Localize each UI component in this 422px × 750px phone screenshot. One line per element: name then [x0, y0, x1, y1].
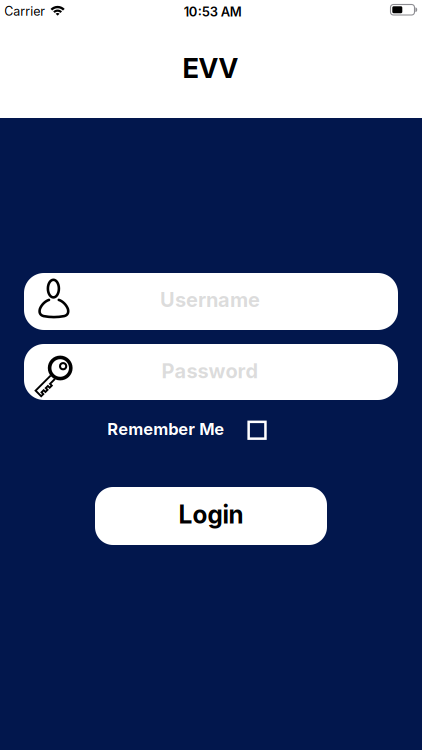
staticText: 10:53 AM: [184, 4, 242, 19]
staticText: Password: [161, 359, 258, 383]
staticText: Remember Me: [107, 419, 224, 439]
staticText: EVV: [183, 52, 239, 85]
button[interactable]: Password: [24, 344, 398, 400]
staticText: Username: [160, 287, 260, 312]
staticText: Login: [178, 500, 243, 529]
button[interactable]: Login: [95, 487, 327, 545]
staticText: Carrier: [4, 4, 45, 19]
button[interactable]: Username: [24, 273, 398, 330]
button[interactable]: Remember Me: [107, 419, 265, 439]
